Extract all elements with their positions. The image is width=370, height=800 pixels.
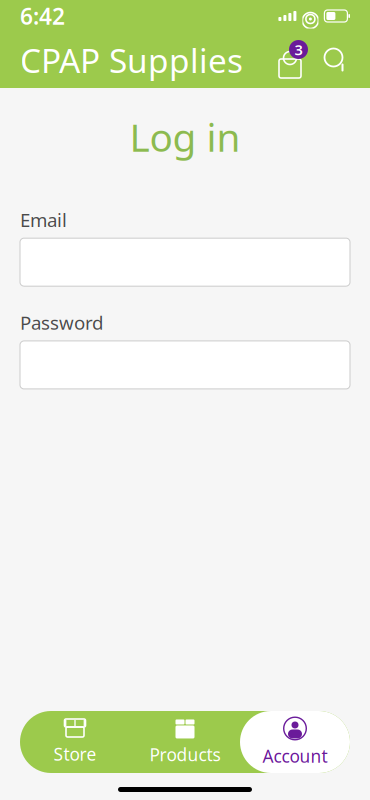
- button[interactable]: Account: [240, 711, 350, 773]
- staticText: Products: [149, 743, 220, 766]
- staticText: Password: [20, 310, 103, 335]
- staticText: CPAP Supplies: [20, 38, 243, 82]
- button[interactable]: Search: [316, 40, 356, 80]
- staticText: Email: [20, 207, 67, 232]
- staticText: 6:42: [20, 1, 65, 31]
- staticText: Store: [53, 742, 96, 765]
- button[interactable]: Cart, 3 items: [272, 40, 308, 80]
- button[interactable]: Products: [130, 711, 240, 773]
- staticText: Account: [262, 744, 327, 767]
- staticText: 3: [294, 40, 302, 59]
- button[interactable]: Store: [20, 711, 130, 773]
- staticText: Log in: [129, 111, 240, 162]
